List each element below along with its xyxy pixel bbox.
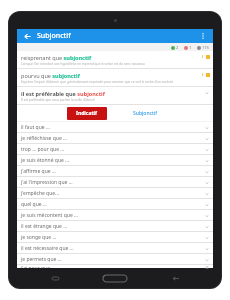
staticText: trop ... pour que ... xyxy=(21,146,204,153)
staticText: 2 xyxy=(176,45,179,50)
staticText: il est étrange que ... xyxy=(21,223,204,230)
button[interactable]: il faut que ... xyxy=(17,122,213,133)
button[interactable]: reisprenant que subjonctif xyxy=(17,51,213,69)
button[interactable]: j'ai peur que ... xyxy=(17,265,213,268)
staticText: je suis étonné que ... xyxy=(21,157,204,164)
button[interactable]: trop ... pour que ... xyxy=(17,144,213,155)
button[interactable]: j'ai l'impression que ... xyxy=(17,177,213,188)
button[interactable]: Subjonctif xyxy=(127,107,164,120)
button[interactable]: More options xyxy=(197,30,209,42)
staticText: il faut que ... xyxy=(21,124,204,131)
staticText: je suis mécontent que ... xyxy=(21,212,204,219)
button[interactable]: Recents xyxy=(50,276,60,281)
staticText: 1 xyxy=(189,45,192,50)
staticText: 115 xyxy=(202,45,209,50)
staticText: Subjonctif xyxy=(37,31,71,41)
staticText: je réfléchisse que ... xyxy=(21,135,204,142)
button[interactable]: je réfléchisse que ... xyxy=(17,133,213,144)
button[interactable]: je permets que ... xyxy=(17,254,213,265)
staticText: Exprime l'espoir d'obtenir que, générale… xyxy=(21,80,173,84)
staticText: Indicatif xyxy=(76,110,98,117)
button[interactable]: j'empêche que... xyxy=(17,188,213,199)
button[interactable]: Home xyxy=(100,273,130,283)
button[interactable]: il est préférable que subjonctif xyxy=(17,87,213,105)
button[interactable]: il est nécessaire que ... xyxy=(17,243,213,254)
button[interactable]: je suis étonné que ... xyxy=(17,155,213,166)
button[interactable]: je suis mécontent que ... xyxy=(17,210,213,221)
button[interactable]: Indicatif xyxy=(67,107,107,120)
button[interactable]: Favourite xyxy=(205,54,210,59)
staticText: il est préférable que subjonctif xyxy=(21,90,105,97)
button[interactable]: j'affirme que ... xyxy=(17,166,213,177)
staticText: Subjonctif xyxy=(133,110,158,117)
staticText: j'empêche que... xyxy=(21,190,204,197)
staticText: j'ai peur que ... xyxy=(21,265,204,268)
button[interactable]: pourvu que subjonctif xyxy=(17,69,213,87)
staticText: j'affirme que ... xyxy=(21,168,204,175)
button[interactable]: Back xyxy=(21,30,33,42)
staticText: reisprenant que subjonctif xyxy=(21,54,92,61)
staticText: je songe que ... xyxy=(21,234,204,241)
staticText: j'ai l'impression que ... xyxy=(21,179,204,186)
staticText: il est nécessaire que ... xyxy=(21,245,204,252)
staticText: quel que ... xyxy=(21,201,204,208)
button[interactable]: Favourite xyxy=(205,72,210,77)
button[interactable]: quel que ... xyxy=(17,199,213,210)
button[interactable]: je songe que ... xyxy=(17,232,213,243)
staticText: Il est préférable que vous partiez la ve… xyxy=(21,98,95,102)
staticText: Lorsque l'on introduit une hypothèse on … xyxy=(21,62,145,66)
button[interactable]: Back xyxy=(171,276,181,281)
staticText: pourvu que subjonctif xyxy=(21,72,80,79)
staticText: je permets que ... xyxy=(21,256,204,263)
button[interactable]: Collapse xyxy=(204,90,210,96)
button[interactable]: il est étrange que ... xyxy=(17,221,213,232)
